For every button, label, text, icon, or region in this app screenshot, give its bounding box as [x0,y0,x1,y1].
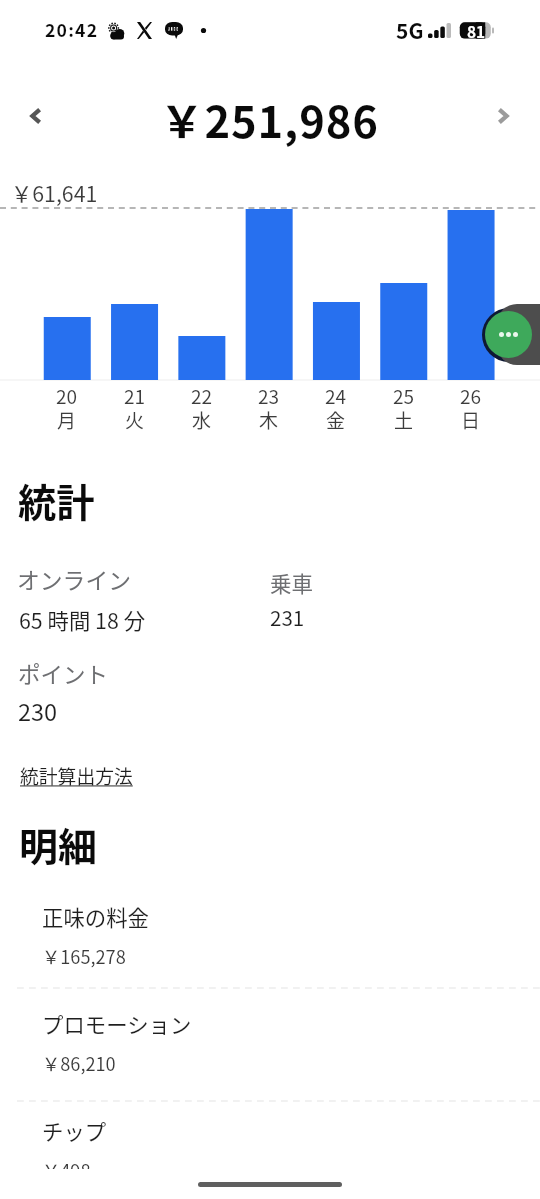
staticText: 65 時間 18 分 [19,604,146,635]
staticText: 24 [325,382,347,410]
staticText: 木 [259,406,279,434]
staticText: 乗車 [270,567,314,598]
staticText: 5G [396,15,424,45]
staticText: 正味の料金 [42,901,149,932]
staticText: 231 [270,602,305,632]
staticText: 日 [461,406,481,434]
staticText: 23 [258,382,280,410]
staticText: 統計 [18,473,95,528]
staticText: 21 [124,382,146,410]
staticText: 金 [326,406,346,434]
button[interactable]: 統計算出方法 [20,762,133,789]
staticText: 25 [393,382,415,410]
staticText: プロモーション [42,1008,192,1039]
staticText: ￥251,986 [160,88,379,151]
button[interactable]: More options [485,311,532,358]
staticText: 明細 [19,816,98,872]
button[interactable]: プロモーション [0,998,540,1088]
staticText: 22 [191,382,213,410]
staticText: ポイント [18,657,109,690]
staticText: 230 [18,694,58,728]
staticText: 20 [56,382,78,410]
staticText: ￥498 [42,1157,91,1183]
button[interactable]: Previous period [23,103,49,129]
staticText: ￥165,278 [42,943,126,969]
button[interactable]: 正味の料金 [0,891,540,981]
button[interactable]: チップ [0,1105,540,1195]
staticText: 土 [394,406,414,434]
staticText: 火 [125,406,145,434]
staticText: ￥61,641 [11,177,98,208]
staticText: 81 [467,20,486,42]
staticText: 26 [460,382,482,410]
staticText: 月 [57,406,77,434]
staticText: 統計算出方法 [20,762,133,789]
staticText: チップ [42,1115,107,1146]
staticText: 20:42 [45,17,99,42]
button[interactable]: Next period [490,103,516,129]
staticText: ￥86,210 [42,1050,116,1076]
staticText: 水 [192,406,212,434]
staticText: オンライン [17,563,131,596]
